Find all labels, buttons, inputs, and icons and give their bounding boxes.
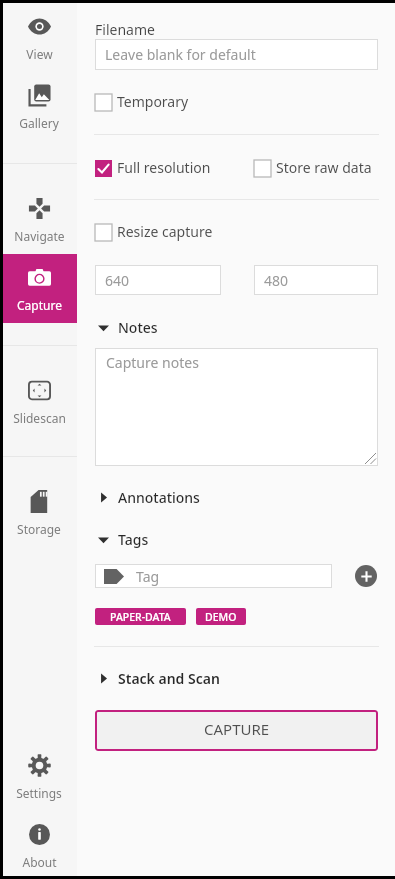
staticText: Slidescan (13, 410, 66, 426)
button[interactable]: Stack and Scan (95, 669, 220, 687)
staticText: Stack and Scan (118, 669, 220, 687)
staticText: About (22, 854, 57, 870)
staticText: Capture notes (106, 353, 199, 372)
button[interactable]: Leave blank for default (95, 39, 378, 70)
button[interactable]: 480 (254, 265, 378, 295)
button[interactable]: Notes (95, 318, 158, 336)
staticText: CAPTURE (204, 719, 270, 739)
button[interactable]: DEMO (196, 608, 246, 625)
staticText: 480 (264, 271, 289, 290)
staticText: Capture (17, 297, 62, 313)
staticText: Settings (16, 785, 62, 801)
staticText: Gallery (19, 115, 59, 131)
button[interactable]: 640 (95, 265, 221, 295)
staticText: 640 (105, 271, 130, 290)
button[interactable]: PAPER-DATA (95, 608, 186, 625)
button[interactable]: Store raw data (254, 159, 372, 178)
button[interactable]: Resize capture (95, 223, 213, 242)
button[interactable]: Temporary (95, 93, 189, 112)
button[interactable]: Add tag (355, 565, 377, 587)
button[interactable]: Navigate (3, 185, 77, 254)
staticText: Store raw data (276, 158, 372, 177)
button[interactable]: Capture notes (95, 348, 378, 466)
staticText: Storage (17, 521, 61, 537)
button[interactable]: About (3, 811, 77, 879)
staticText: Annotations (118, 488, 200, 506)
button[interactable]: Capture (3, 254, 77, 323)
button[interactable]: Tag (95, 564, 332, 588)
button[interactable]: CAPTURE (95, 710, 378, 751)
button[interactable]: Settings (3, 742, 77, 811)
button[interactable]: View (3, 3, 77, 72)
staticText: Navigate (14, 228, 65, 244)
button[interactable]: Full resolution (95, 159, 211, 178)
button[interactable]: Storage (3, 478, 77, 547)
staticText: DEMO (205, 610, 237, 624)
staticText: Notes (118, 318, 158, 336)
staticText: Full resolution (117, 158, 211, 177)
staticText: Tag (136, 567, 160, 586)
staticText: Resize capture (117, 222, 213, 241)
button[interactable]: Tags (95, 530, 149, 548)
staticText: Tags (118, 530, 149, 548)
button[interactable]: Gallery (3, 72, 77, 141)
staticText: View (26, 46, 53, 62)
staticText: Filename (95, 20, 155, 39)
staticText: PAPER-DATA (110, 610, 171, 624)
button[interactable]: Annotations (95, 488, 200, 506)
staticText: Temporary (117, 92, 189, 111)
staticText: Leave blank for default (105, 45, 256, 64)
button[interactable]: Slidescan (3, 367, 77, 436)
